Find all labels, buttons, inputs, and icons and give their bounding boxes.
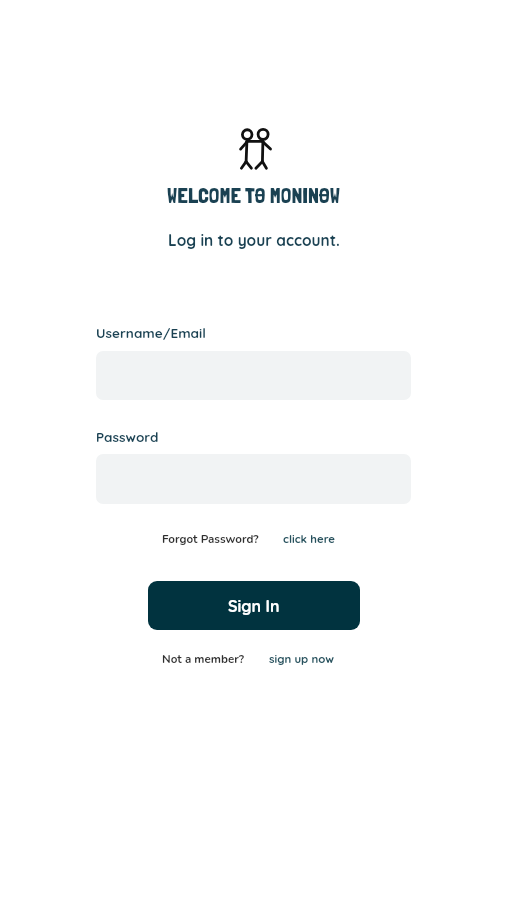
staticText: Not a member? <box>162 651 245 667</box>
staticText: Password <box>96 428 159 445</box>
other: Moninow logo <box>240 128 273 170</box>
staticText: WELCOME TO MONINOW <box>167 182 340 208</box>
button[interactable]: Sign In <box>148 581 360 630</box>
staticText: click here <box>283 532 336 546</box>
staticText: Username/Email <box>96 324 206 341</box>
staticText: sign up now <box>269 652 335 666</box>
button[interactable]: sign up now <box>269 652 335 666</box>
staticText: Sign In <box>228 596 280 616</box>
button[interactable]: click here <box>283 532 336 546</box>
staticText: Log in to your account. <box>168 231 340 250</box>
staticText: Forgot Password? <box>162 531 259 547</box>
